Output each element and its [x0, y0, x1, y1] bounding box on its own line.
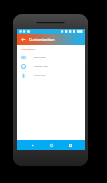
staticText: Customization — [21, 48, 36, 51]
button[interactable]: Back — [19, 35, 28, 44]
button[interactable]: Search Bar — [17, 52, 85, 61]
button[interactable]: Back — [28, 141, 36, 149]
button[interactable]: Voice Icon — [17, 70, 85, 79]
button[interactable]: Google Logo — [17, 61, 85, 70]
staticText: Voice Icon — [34, 73, 46, 76]
staticText: Google Logo — [34, 64, 49, 67]
staticText: Search Bar — [34, 55, 46, 58]
button[interactable]: Recents — [66, 141, 74, 149]
staticText: Customization — [29, 37, 55, 42]
button[interactable]: Home — [47, 141, 55, 149]
